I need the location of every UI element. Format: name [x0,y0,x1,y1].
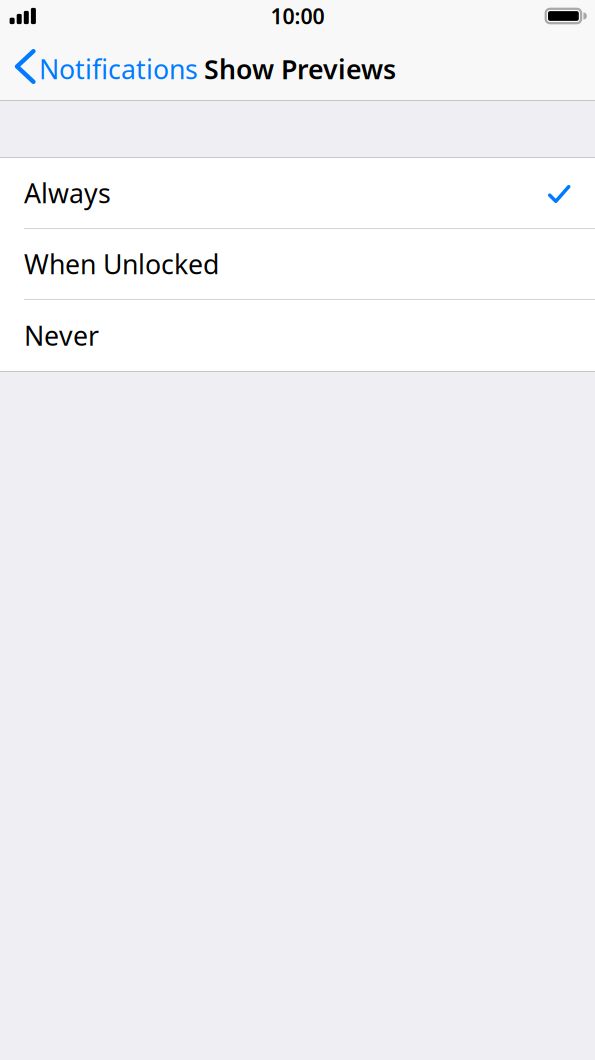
staticText: When Unlocked [24,246,219,282]
button[interactable]: Back to Notifications [0,35,204,103]
button[interactable]: Always [0,158,595,228]
button[interactable]: Never [0,300,595,371]
staticText: Show Previews [204,51,396,87]
staticText: Always [24,175,111,211]
button[interactable]: When Unlocked [0,229,595,299]
staticText: 10:00 [270,2,324,30]
staticText: Notifications [39,51,198,87]
staticText: Never [24,318,99,353]
